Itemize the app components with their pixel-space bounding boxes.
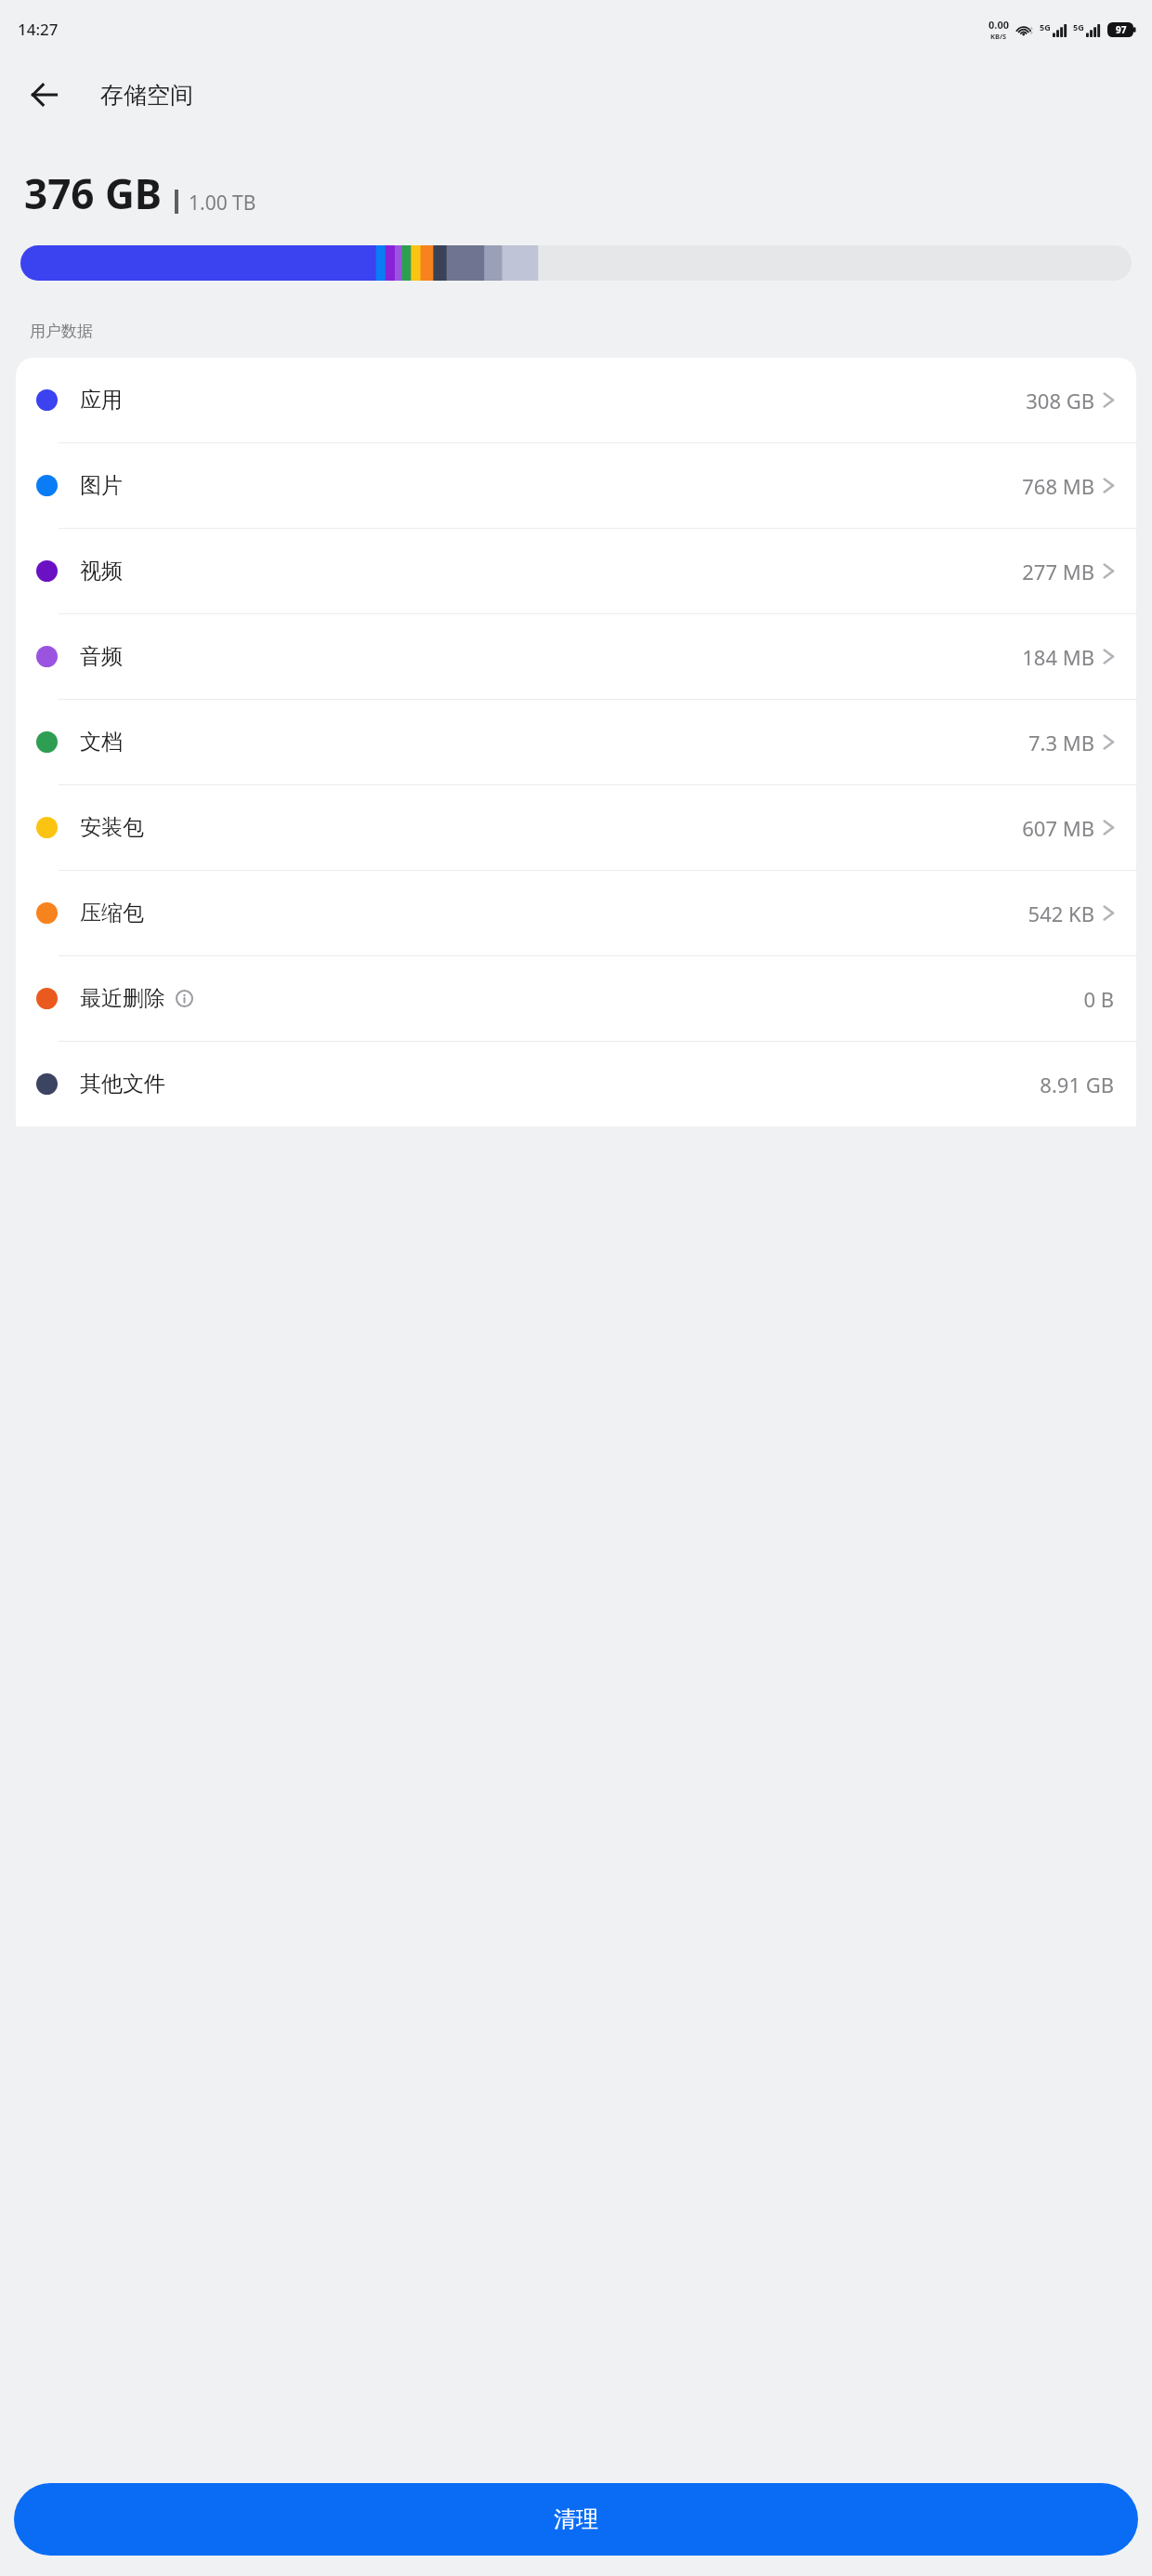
staticText: 8.91 GB: [1040, 1071, 1114, 1098]
button[interactable]: 文档: [16, 700, 1136, 784]
staticText: 308 GB: [1026, 387, 1094, 414]
staticText: 5G: [1040, 21, 1051, 33]
staticText: 文档: [80, 729, 123, 756]
staticText: 用户数据: [30, 322, 93, 341]
staticText: 压缩包: [80, 900, 144, 927]
staticText: 376 GB: [24, 165, 163, 221]
button[interactable]: Back: [20, 71, 69, 119]
staticText: 0.00: [988, 18, 1009, 32]
staticText: 图片: [80, 472, 123, 499]
staticText: 277 MB: [1022, 558, 1094, 585]
staticText: 清理: [554, 2505, 598, 2533]
button[interactable]: 应用: [16, 358, 1136, 442]
button[interactable]: 清理: [14, 2483, 1138, 2556]
button[interactable]: 视频: [16, 529, 1136, 613]
staticText: KB/S: [990, 32, 1007, 41]
staticText: 14:27: [18, 19, 59, 40]
button[interactable]: 其他文件: [16, 1042, 1136, 1126]
other: Info: [176, 990, 193, 1007]
button[interactable]: 安装包: [16, 785, 1136, 870]
button[interactable]: 压缩包: [16, 871, 1136, 955]
button[interactable]: 最近删除: [16, 956, 1136, 1041]
staticText: 1.00 TB: [189, 190, 256, 217]
staticText: 184 MB: [1022, 643, 1094, 671]
staticText: 存储空间: [100, 81, 193, 110]
staticText: 音频: [80, 643, 123, 670]
staticText: 97: [1116, 23, 1127, 36]
staticText: 最近删除: [80, 985, 165, 1012]
staticText: 5G: [1073, 21, 1084, 33]
staticText: 应用: [80, 387, 123, 414]
staticText: 其他文件: [80, 1071, 165, 1097]
staticText: 768 MB: [1022, 472, 1094, 500]
button[interactable]: 音频: [16, 614, 1136, 699]
staticText: 7.3 MB: [1028, 729, 1094, 756]
staticText: 542 KB: [1028, 900, 1094, 927]
staticText: 安装包: [80, 814, 144, 841]
button[interactable]: 图片: [16, 443, 1136, 528]
staticText: 视频: [80, 558, 123, 585]
staticText: 0 B: [1083, 985, 1114, 1013]
staticText: 607 MB: [1022, 814, 1094, 842]
